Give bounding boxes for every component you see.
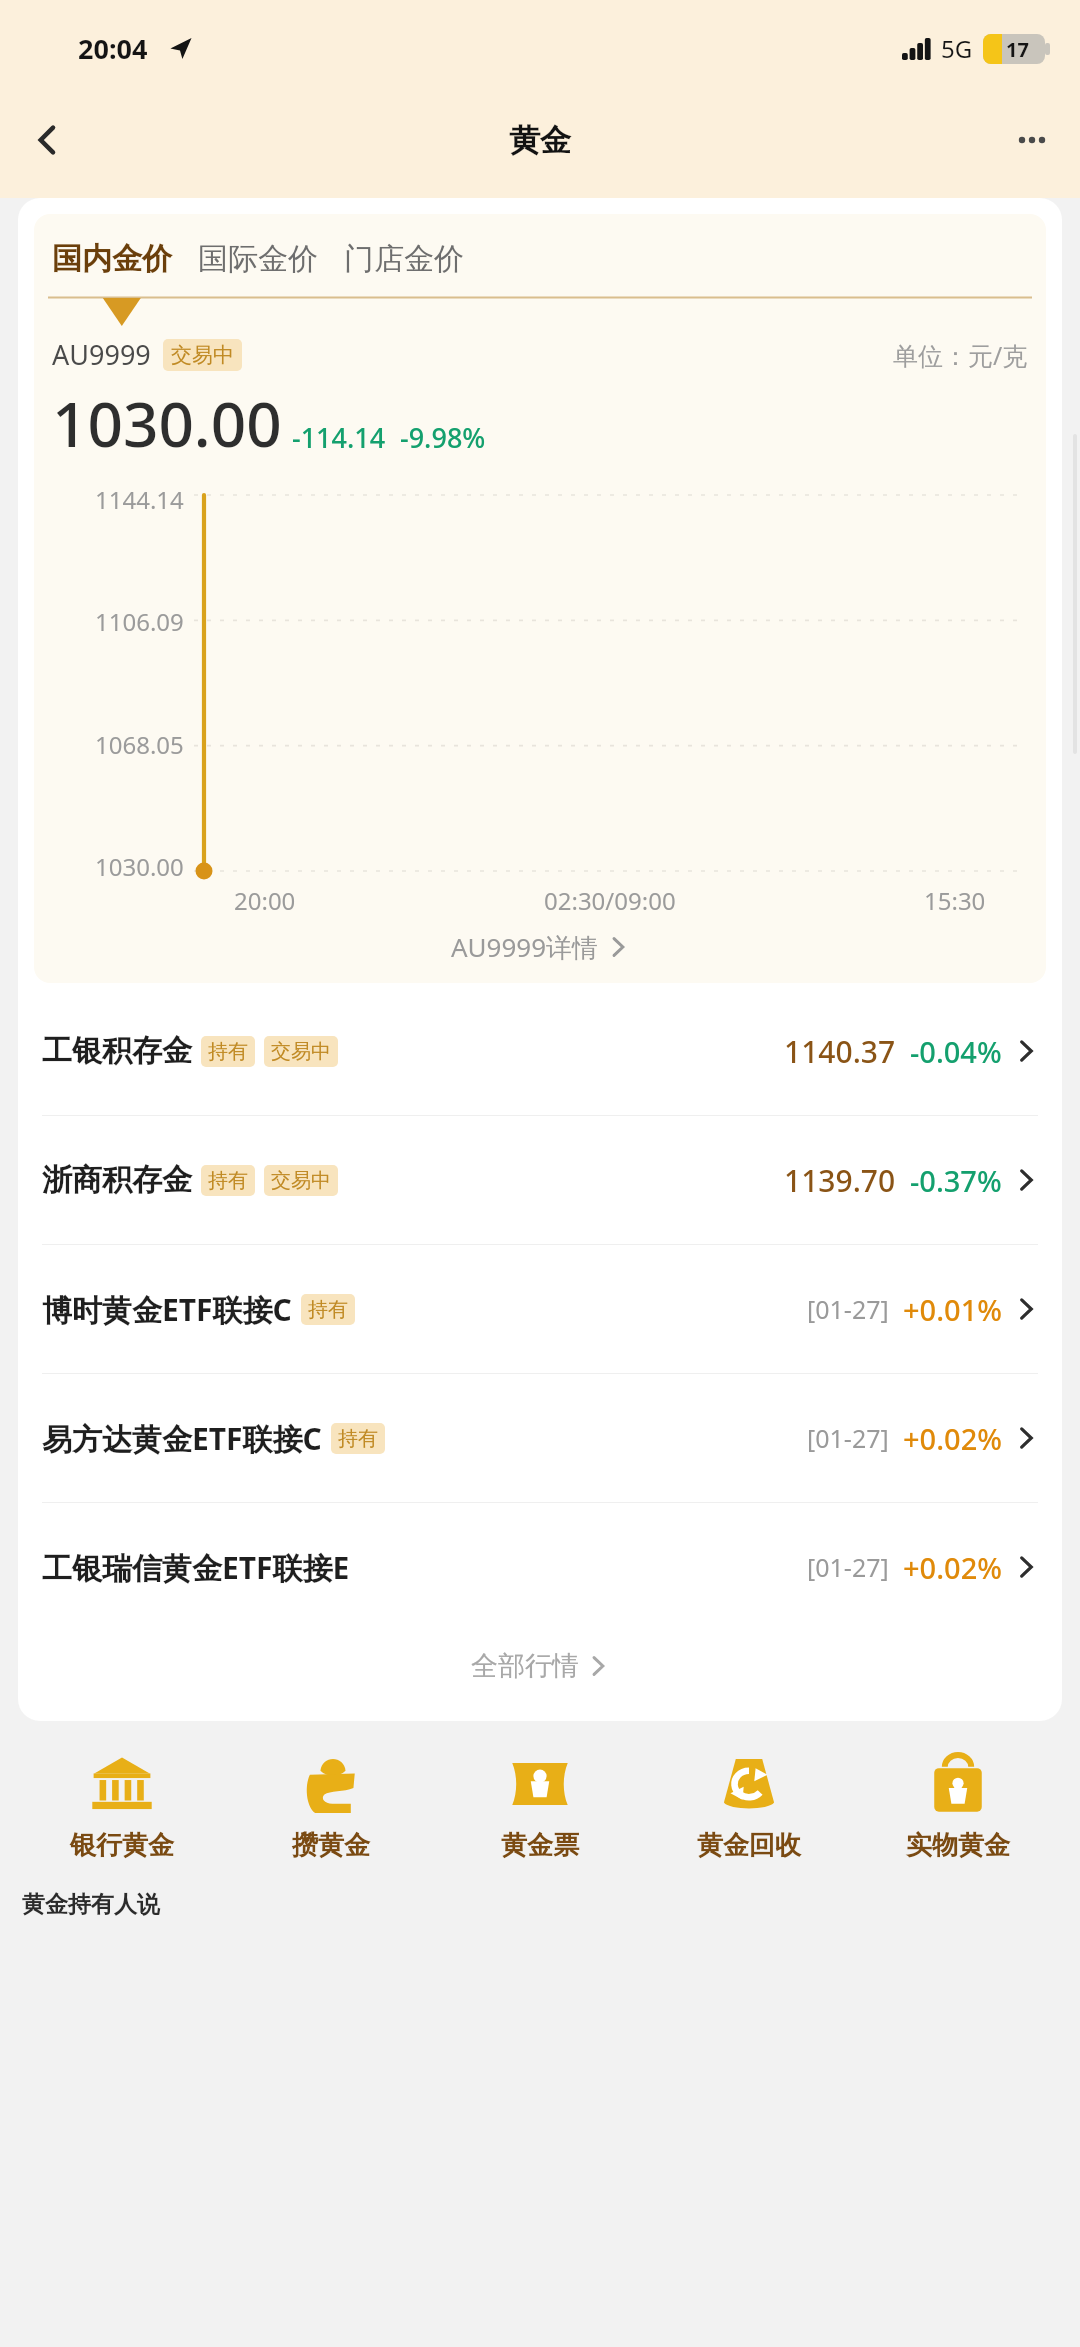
staticText: 1139.70 [784,1160,896,1201]
staticText: 02:30/09:00 [544,884,676,917]
button[interactable]: 工银瑞信黄金ETF联接E [18,1503,1062,1631]
staticText: 20:00 [234,884,296,917]
staticText: 15:30 [924,884,986,917]
staticText: -114.14 [292,419,386,456]
button[interactable]: 黄金票 [435,1745,644,1868]
staticText: 门店金价 [344,240,464,278]
staticText: 银行黄金 [70,1829,174,1862]
staticText: -0.04% [910,1032,1002,1071]
staticText: 持有 [208,1168,248,1193]
button[interactable]: 浙商积存金 [18,1116,1062,1244]
staticText: 全部行情 [471,1649,579,1683]
staticText: 1030.00 [52,381,282,465]
staticText: 国际金价 [198,240,318,278]
staticText: 持有 [208,1039,248,1064]
staticText: 交易中 [271,1168,331,1193]
staticText: 黄金 [509,121,571,160]
staticText: 浙商积存金 [42,1161,192,1199]
staticText: 攒黄金 [292,1829,370,1862]
button[interactable]: 黄金回收 [644,1745,853,1868]
staticText: 交易中 [171,342,234,368]
staticText: 20:04 [78,30,148,67]
staticText: -9.98% [400,419,486,456]
button[interactable]: 门店金价 [342,236,466,282]
staticText: 1068.05 [95,728,184,761]
staticText: 单位：元/克 [893,338,1028,372]
staticText: AU9999详情 [451,929,599,965]
staticText: 持有 [308,1297,348,1322]
button[interactable]: 银行黄金 [18,1745,226,1868]
button[interactable]: 国际金价 [196,236,320,282]
staticText: +0.02% [903,1419,1002,1458]
button[interactable]: AU9999详情 [34,929,1046,965]
button[interactable]: 攒黄金 [226,1745,435,1868]
staticText: 1140.37 [784,1031,896,1072]
staticText: 黄金票 [501,1829,579,1862]
staticText: 交易中 [271,1039,331,1064]
staticText: 实物黄金 [906,1829,1010,1862]
staticText: 黄金回收 [697,1829,801,1862]
staticText: 黄金持有人说 [22,1890,160,1919]
staticText: [01-27] [807,1550,889,1584]
staticText: 1106.09 [95,605,184,638]
staticText: +0.02% [903,1548,1002,1587]
staticText: [01-27] [807,1421,889,1455]
button[interactable]: 工银积存金 [18,987,1062,1115]
staticText: 5G [941,32,973,65]
staticText: 17 [1006,36,1029,63]
staticText: -0.37% [910,1161,1002,1200]
staticText: AU9999 [52,336,151,373]
button[interactable]: 国内金价 [50,236,174,282]
staticText: +0.01% [903,1290,1002,1329]
button[interactable]: Back [18,110,78,170]
button[interactable]: 博时黄金ETF联接C [18,1245,1062,1373]
staticText: 易方达黄金ETF联接C [42,1418,322,1459]
button[interactable]: More options [1002,110,1062,170]
button[interactable]: 全部行情 [18,1631,1062,1701]
button[interactable]: 实物黄金 [853,1745,1062,1868]
staticText: 持有 [338,1426,378,1451]
staticText: 工银积存金 [42,1032,192,1070]
button[interactable]: 易方达黄金ETF联接C [18,1374,1062,1502]
staticText: [01-27] [807,1292,889,1326]
staticText: 工银瑞信黄金ETF联接E [42,1547,350,1588]
staticText: 博时黄金ETF联接C [42,1289,292,1330]
staticText: 国内金价 [52,240,172,278]
staticText: 1030.00 [95,850,184,883]
staticText: 1144.14 [95,483,184,516]
